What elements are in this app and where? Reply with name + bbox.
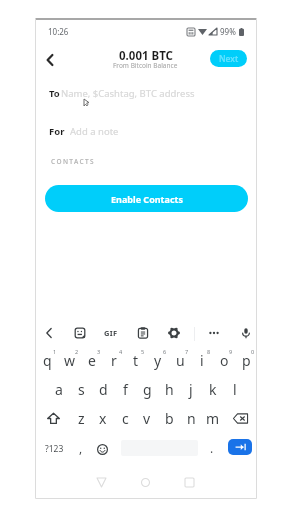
- button[interactable]: Emoji: [92, 438, 112, 460]
- staticText: h: [165, 380, 174, 399]
- staticText: GIF: [104, 328, 118, 338]
- button[interactable]: Backspace: [224, 408, 257, 428]
- button[interactable]: u: [169, 345, 191, 371]
- button[interactable]: j: [180, 374, 202, 400]
- button[interactable]: c: [114, 408, 136, 428]
- button[interactable]: More options: [203, 319, 225, 346]
- button[interactable]: Back: [88, 469, 114, 495]
- staticText: 99%: [220, 26, 236, 37]
- staticText: b: [165, 409, 174, 428]
- staticText: Add a note: [70, 125, 119, 138]
- staticText: 0: [251, 348, 255, 355]
- button[interactable]: h: [158, 374, 180, 400]
- staticText: 1: [53, 348, 57, 355]
- button[interactable]: q: [36, 345, 59, 371]
- button[interactable]: Back: [38, 48, 62, 72]
- staticText: j: [189, 380, 193, 399]
- staticText: k: [209, 380, 217, 399]
- staticText: .: [210, 440, 214, 456]
- staticText: From Bitcoin Balance: [113, 61, 178, 70]
- staticText: 3: [97, 348, 101, 355]
- staticText: 4: [119, 348, 123, 355]
- button[interactable]: ,: [73, 438, 89, 460]
- staticText: 2: [75, 348, 79, 355]
- staticText: i: [200, 351, 204, 370]
- staticText: c: [122, 409, 129, 428]
- staticText: y: [154, 351, 162, 370]
- button[interactable]: r: [103, 345, 125, 371]
- button[interactable]: m: [202, 408, 224, 428]
- staticText: ,: [79, 440, 83, 456]
- button[interactable]: Recent apps: [176, 469, 202, 495]
- staticText: e: [88, 351, 96, 370]
- staticText: Name, $Cashtag, BTC address: [61, 87, 195, 100]
- button[interactable]: Home: [132, 469, 158, 495]
- button[interactable]: .: [204, 438, 220, 460]
- staticText: l: [233, 380, 237, 399]
- button[interactable]: To: [36, 82, 257, 104]
- button[interactable]: b: [158, 408, 180, 428]
- button[interactable]: Enable Contacts: [45, 185, 248, 212]
- staticText: d: [99, 380, 108, 399]
- button[interactable]: Clipboard: [132, 319, 154, 346]
- staticText: g: [143, 380, 152, 399]
- button[interactable]: l: [224, 374, 246, 400]
- staticText: m: [206, 409, 220, 428]
- staticText: r: [111, 351, 117, 370]
- staticText: o: [220, 351, 229, 370]
- staticText: u: [176, 351, 185, 370]
- staticText: Enable Contacts: [111, 193, 183, 205]
- staticText: x: [99, 409, 107, 428]
- button[interactable]: Next: [210, 50, 247, 67]
- button[interactable]: y: [147, 345, 169, 371]
- button[interactable]: z: [70, 408, 92, 428]
- button[interactable]: Enter: [228, 439, 252, 455]
- button[interactable]: Stickers: [69, 319, 91, 346]
- button[interactable]: Shift: [36, 408, 70, 428]
- button[interactable]: d: [92, 374, 114, 400]
- button[interactable]: Back: [38, 319, 60, 346]
- staticText: 0.001 BTC: [119, 48, 173, 64]
- staticText: 6: [163, 348, 167, 355]
- staticText: n: [187, 409, 196, 428]
- staticText: 8: [207, 348, 211, 355]
- staticText: t: [133, 351, 139, 370]
- button[interactable]: t: [125, 345, 147, 371]
- staticText: s: [78, 380, 85, 399]
- staticText: p: [242, 351, 251, 370]
- staticText: For: [49, 125, 65, 138]
- staticText: 5: [141, 348, 145, 355]
- button[interactable]: w: [59, 345, 81, 371]
- button[interactable]: For: [36, 120, 257, 142]
- button[interactable]: a: [47, 374, 70, 400]
- button[interactable]: Settings: [163, 319, 185, 346]
- button[interactable]: e: [81, 345, 103, 371]
- staticText: q: [43, 351, 52, 370]
- button[interactable]: ?123: [38, 438, 70, 460]
- button[interactable]: GIF: [100, 319, 122, 346]
- button[interactable]: o: [213, 345, 235, 371]
- staticText: CONTACTS: [51, 157, 96, 166]
- button[interactable]: s: [70, 374, 92, 400]
- staticText: 9: [229, 348, 233, 355]
- staticText: v: [143, 409, 151, 428]
- staticText: To: [49, 87, 60, 100]
- button[interactable]: Voice input: [235, 319, 257, 346]
- staticText: a: [55, 380, 63, 399]
- button[interactable]: k: [202, 374, 224, 400]
- staticText: 10:26: [48, 26, 69, 37]
- button[interactable]: i: [191, 345, 213, 371]
- button[interactable]: v: [136, 408, 158, 428]
- button[interactable]: f: [114, 374, 136, 400]
- button[interactable]: g: [136, 374, 158, 400]
- staticText: 7: [185, 348, 189, 355]
- button[interactable]: x: [92, 408, 114, 428]
- button[interactable]: n: [180, 408, 202, 428]
- staticText: w: [64, 351, 76, 370]
- button[interactable]: p: [235, 345, 257, 371]
- staticText: f: [123, 380, 128, 399]
- staticText: Next: [219, 53, 239, 65]
- staticText: ?123: [45, 443, 64, 455]
- staticText: z: [78, 409, 85, 428]
